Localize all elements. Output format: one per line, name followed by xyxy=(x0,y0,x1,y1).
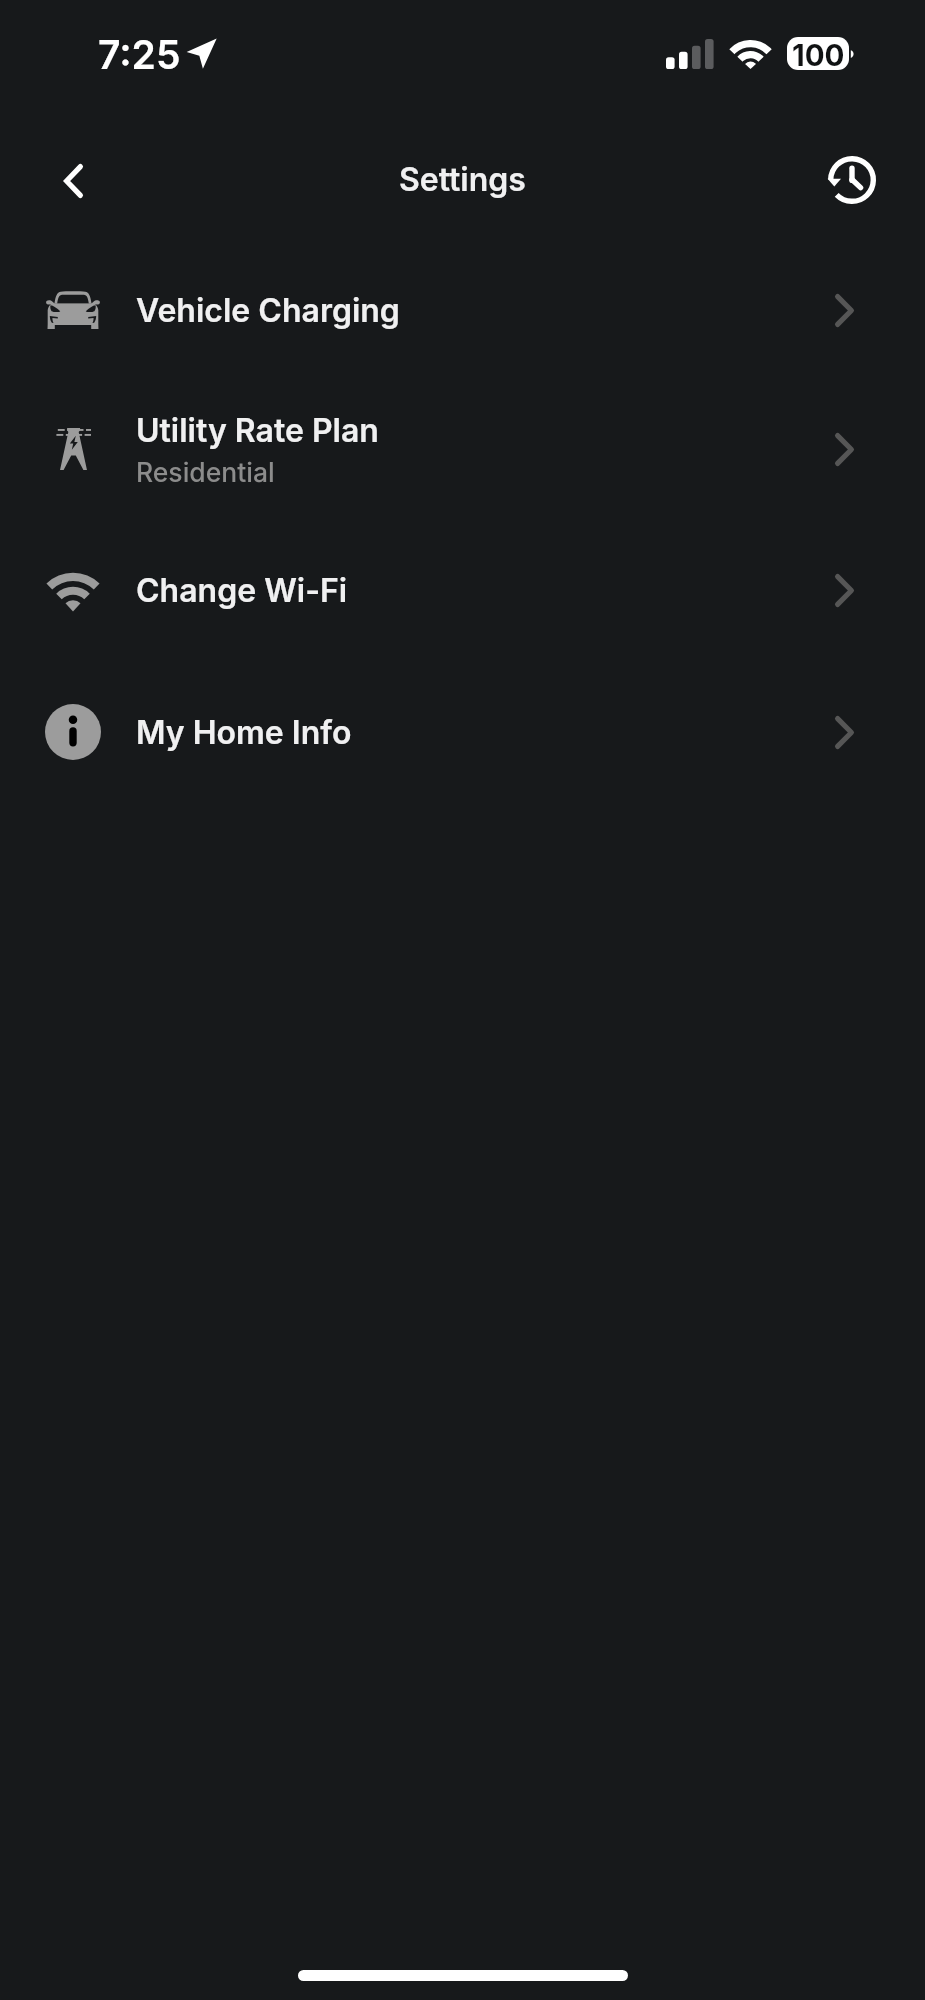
button[interactable]: Change Wi-Fi xyxy=(0,520,925,660)
staticText: Utility Rate Plan xyxy=(136,411,379,450)
staticText: Residential xyxy=(136,456,275,488)
staticText: Change Wi-Fi xyxy=(136,571,348,610)
staticText: Vehicle Charging xyxy=(136,291,400,330)
staticText: 100 xyxy=(792,37,845,70)
button[interactable]: History xyxy=(817,145,887,215)
button[interactable]: Utility Rate Plan xyxy=(0,379,925,519)
button[interactable]: Back xyxy=(37,145,109,217)
button[interactable]: Vehicle Charging xyxy=(0,240,925,380)
staticText: Settings xyxy=(399,160,526,199)
staticText: 7:25 xyxy=(98,31,181,78)
staticText: My Home Info xyxy=(136,713,352,752)
button[interactable]: My Home Info xyxy=(0,662,925,802)
